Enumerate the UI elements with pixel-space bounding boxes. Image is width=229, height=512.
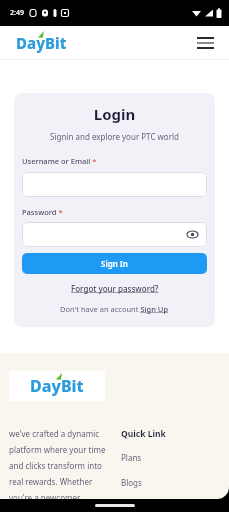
staticText: Don't have an account Sign Up — [60, 304, 169, 314]
button[interactable] — [195, 35, 216, 51]
staticText: 2:49 — [10, 8, 24, 18]
button[interactable]: Plans — [121, 452, 142, 463]
staticText: DayBit — [16, 33, 67, 53]
staticText: Blogs — [121, 477, 142, 488]
staticText: Quick Link — [121, 428, 166, 440]
button[interactable] — [22, 172, 207, 197]
staticText: Sign In — [101, 258, 128, 269]
button[interactable]: Sign In — [22, 253, 207, 274]
staticText: Forgot your password? — [71, 283, 159, 294]
staticText: Login — [22, 104, 207, 124]
button[interactable] — [22, 222, 207, 247]
button[interactable]: Don't have an account Sign Up — [60, 304, 169, 314]
button[interactable]: DayBit — [16, 33, 67, 53]
staticText: Username or Email * — [22, 156, 97, 166]
staticText: we've crafted a dynamic platform where y… — [9, 428, 117, 499]
button[interactable]: Forgot your password? — [71, 283, 159, 294]
staticText: Signin and explore your PTC world — [22, 131, 207, 142]
staticText: DayBit — [30, 375, 84, 397]
staticText: Password * — [22, 207, 63, 217]
button[interactable]: Blogs — [121, 477, 142, 488]
staticText: Plans — [121, 452, 142, 463]
